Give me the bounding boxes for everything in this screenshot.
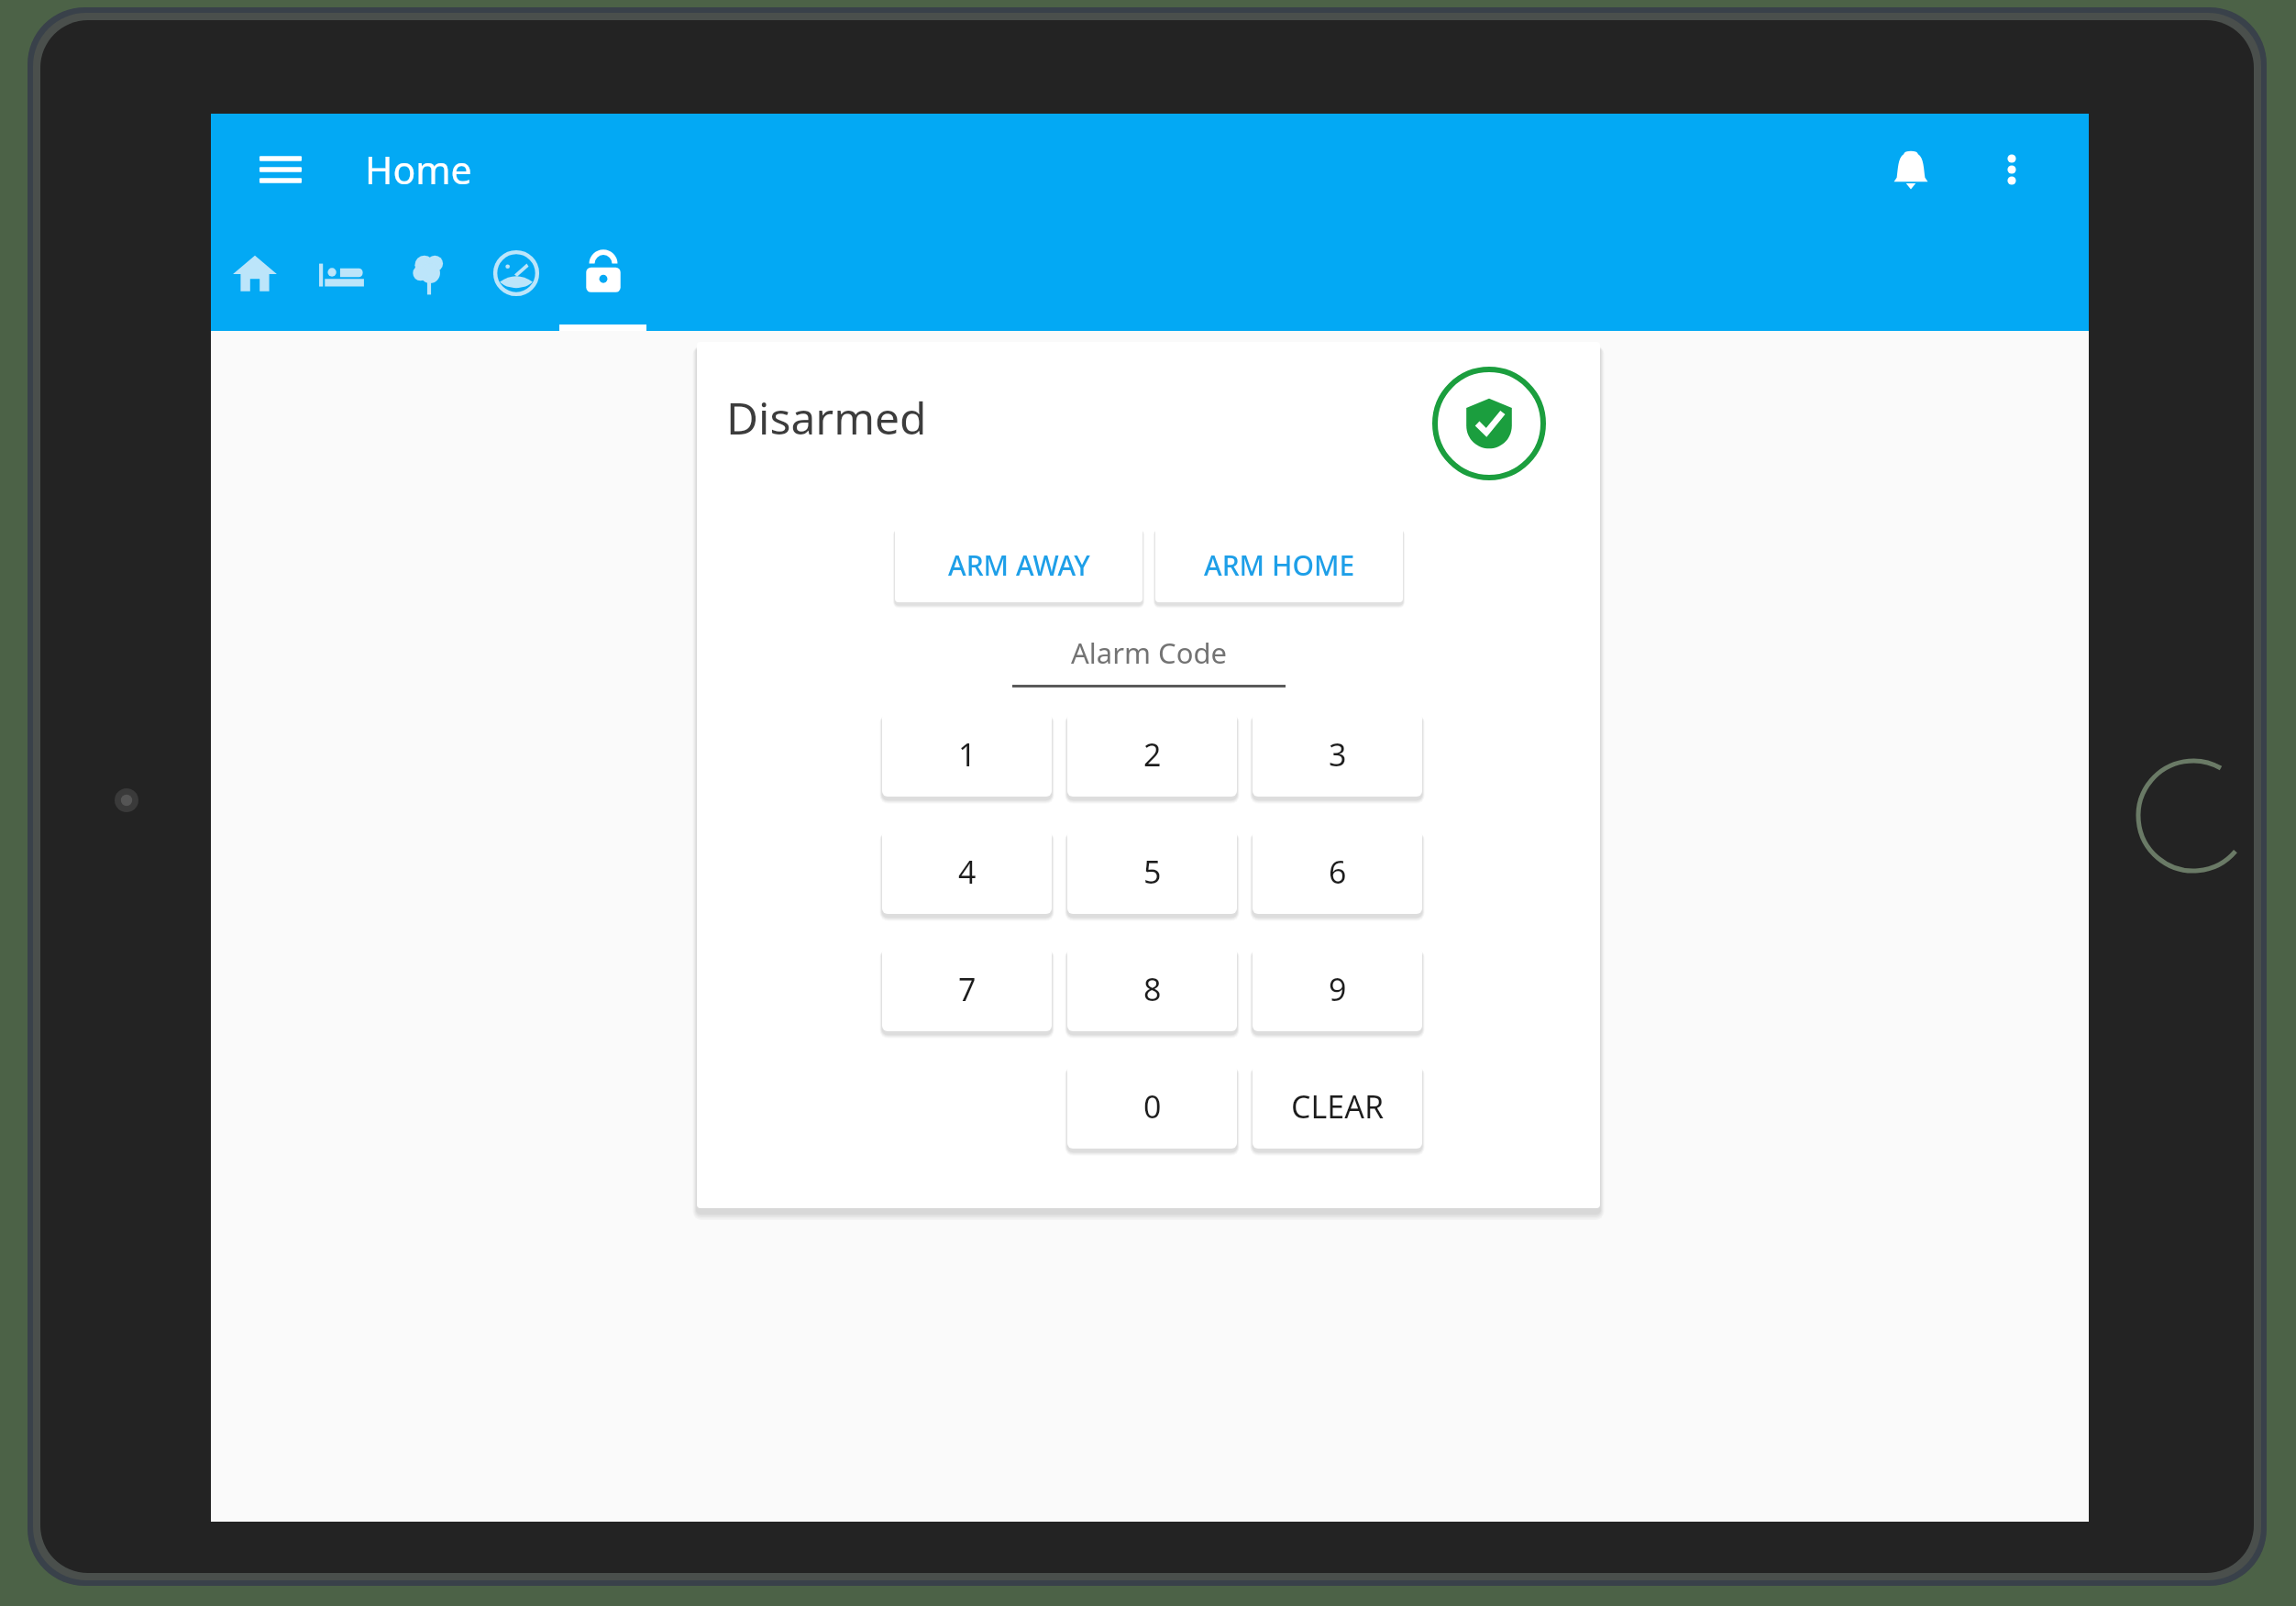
staticText: ARM AWAY bbox=[948, 546, 1090, 584]
staticText: 3 bbox=[1329, 733, 1347, 775]
button[interactable]: Home tab bbox=[211, 225, 298, 331]
button[interactable]: Alarm status: disarmed bbox=[1432, 367, 1546, 480]
staticText: Alarm Code bbox=[1071, 633, 1227, 672]
button[interactable]: CLEAR bbox=[1253, 1064, 1422, 1149]
staticText: Disarmed bbox=[726, 388, 927, 447]
staticText: 2 bbox=[1143, 733, 1162, 775]
button[interactable]: Bedroom tab bbox=[298, 225, 385, 331]
staticText: 5 bbox=[1143, 851, 1162, 893]
button[interactable]: 3 bbox=[1253, 712, 1422, 797]
button[interactable]: Alarm Code bbox=[1012, 633, 1286, 687]
staticText: 6 bbox=[1329, 851, 1347, 893]
button[interactable]: Open navigation menu bbox=[246, 135, 315, 204]
staticText: 9 bbox=[1329, 968, 1347, 1010]
button[interactable]: 2 bbox=[1067, 712, 1237, 797]
button[interactable]: 0 bbox=[1067, 1064, 1237, 1149]
staticText: 1 bbox=[958, 733, 977, 775]
staticText: 0 bbox=[1143, 1085, 1162, 1127]
button[interactable]: 4 bbox=[882, 830, 1052, 914]
button[interactable]: 1 bbox=[882, 712, 1052, 797]
button[interactable]: More options bbox=[1975, 133, 2048, 206]
button[interactable]: 9 bbox=[1253, 947, 1422, 1031]
staticText: 8 bbox=[1143, 968, 1162, 1010]
button[interactable]: Notifications bbox=[1869, 127, 1953, 212]
staticText: CLEAR bbox=[1291, 1085, 1385, 1127]
button[interactable]: 8 bbox=[1067, 947, 1237, 1031]
button[interactable]: 5 bbox=[1067, 830, 1237, 914]
button[interactable]: Alarm tab bbox=[559, 225, 646, 331]
button[interactable]: ARM AWAY bbox=[895, 527, 1142, 602]
button[interactable]: Sensors tab bbox=[472, 225, 559, 331]
button[interactable]: 6 bbox=[1253, 830, 1422, 914]
staticText: 4 bbox=[958, 851, 977, 893]
staticText: Home bbox=[365, 144, 472, 195]
button[interactable]: ARM HOME bbox=[1155, 527, 1403, 602]
button[interactable]: Outdoor tab bbox=[385, 225, 472, 331]
staticText: ARM HOME bbox=[1204, 546, 1355, 584]
button[interactable]: 7 bbox=[882, 947, 1052, 1031]
staticText: 7 bbox=[958, 968, 977, 1010]
